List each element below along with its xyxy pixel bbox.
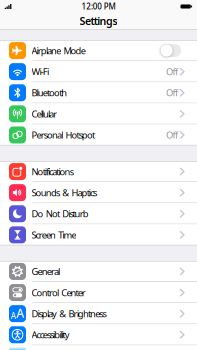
button[interactable]: Accessibility xyxy=(0,324,197,345)
button[interactable]: Airplane Mode xyxy=(160,44,181,57)
staticText: Center xyxy=(61,286,86,299)
staticText: Control xyxy=(31,286,59,299)
button[interactable]: Control xyxy=(0,282,197,303)
staticText: Off xyxy=(166,65,178,78)
staticText: Notifications xyxy=(31,165,74,178)
staticText: Cellular xyxy=(31,108,57,120)
staticText: General xyxy=(31,265,60,278)
staticText: Off xyxy=(166,87,178,99)
staticText: Personal xyxy=(31,129,63,141)
staticText: Sounds xyxy=(31,186,60,199)
staticText: 12:00 PM xyxy=(81,1,115,12)
button[interactable]: Cellular xyxy=(0,103,197,124)
button[interactable]: A xyxy=(0,303,197,324)
staticText: Display xyxy=(31,307,57,320)
staticText: Airplane xyxy=(31,44,61,57)
button[interactable]: Do xyxy=(0,203,197,224)
button[interactable]: General xyxy=(0,261,197,282)
staticText: Time xyxy=(58,229,76,241)
staticText: Off xyxy=(166,129,178,141)
staticText: Haptics xyxy=(71,186,97,199)
staticText: Mode xyxy=(63,44,86,57)
staticText: Disturb xyxy=(62,208,89,220)
button[interactable]: Screen xyxy=(0,224,197,245)
staticText: A xyxy=(16,305,24,321)
staticText: Settings xyxy=(80,14,117,28)
button[interactable]: Personal xyxy=(0,124,197,145)
staticText: Do xyxy=(31,208,44,220)
staticText: Brightness xyxy=(68,307,106,320)
button[interactable]: Bluetooth xyxy=(0,82,197,103)
staticText: & xyxy=(62,186,69,199)
staticText: Not xyxy=(46,208,60,220)
staticText: Screen xyxy=(31,229,56,241)
staticText: Hotspot xyxy=(65,129,95,141)
button[interactable]: Wallpaper xyxy=(0,345,197,350)
button[interactable]: Sounds xyxy=(0,182,197,203)
staticText: A xyxy=(11,310,16,321)
staticText: & xyxy=(59,307,66,320)
staticText: Bluetooth xyxy=(31,87,67,99)
staticText: Accessibility xyxy=(31,329,70,341)
button[interactable]: Notifications xyxy=(0,161,197,182)
button[interactable]: Wi-Fi xyxy=(0,61,197,82)
staticText: Wi-Fi xyxy=(31,65,49,78)
